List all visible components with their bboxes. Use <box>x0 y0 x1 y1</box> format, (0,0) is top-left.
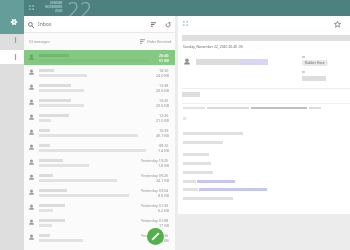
button[interactable]: Yesterday 03:54 <box>24 185 175 200</box>
staticText: 20.6 KB <box>156 103 169 108</box>
staticText: Sunday, November 22, 2020 20:40 -06 <box>183 44 243 49</box>
staticText: SUNDAY <box>50 1 63 5</box>
staticText: 8.0 KB <box>158 193 169 198</box>
staticText: 12:26 <box>159 113 169 118</box>
button[interactable]: 08:32 <box>24 140 175 155</box>
staticText: Order Received <box>147 39 172 44</box>
staticText: 18:30 <box>159 68 169 73</box>
staticText: 10:29 <box>159 128 169 133</box>
button[interactable]: Search <box>25 19 36 30</box>
button[interactable]: Yesterday 09:25 <box>24 170 175 185</box>
button[interactable]: Yesterday 01:08 <box>24 215 175 230</box>
staticText: Yesterday 03:54 <box>141 188 169 193</box>
staticText: Inbox <box>38 21 52 28</box>
staticText: 20:40 <box>159 53 169 58</box>
button[interactable]: Settings <box>7 15 20 28</box>
button[interactable]: 13:58 <box>24 80 175 95</box>
button[interactable]: Yesterday 00:36 <box>24 230 175 245</box>
staticText: 08:32 <box>159 143 169 148</box>
staticText: Yesterday 09:25 <box>141 173 169 178</box>
staticText: 17 KB <box>159 223 169 228</box>
staticText: 53 messages <box>29 39 50 44</box>
staticText: Yesterday 00:36 <box>141 233 169 238</box>
staticText: Rubber Hose <box>305 61 325 65</box>
staticText: 24.0 KB <box>156 73 169 78</box>
staticText: 13:25 <box>159 98 169 103</box>
button[interactable]: Rubber Hose <box>302 60 328 66</box>
button[interactable]: 10:29 <box>24 125 175 140</box>
staticText: 6.2 KB <box>158 208 169 213</box>
staticText: 20.6 KB <box>156 88 169 93</box>
button[interactable]: Order Received <box>138 37 174 46</box>
button[interactable]: Filter <box>148 19 159 30</box>
staticText: 21.0 KB <box>156 118 169 123</box>
staticText: 22 <box>67 0 93 24</box>
staticText: 49.7 KB <box>156 133 169 138</box>
staticText: 51 KB <box>159 58 169 63</box>
button[interactable]: Star <box>331 18 344 31</box>
staticText: 2020 <box>55 9 63 13</box>
staticText: Yesterday 01:08 <box>141 218 169 223</box>
button[interactable]: 12:26 <box>24 110 175 125</box>
staticText: 1.8 KB <box>158 163 169 168</box>
button[interactable]: Yesterday 19:25 <box>24 155 175 170</box>
button[interactable]: Yesterday 01:30 <box>24 200 175 215</box>
button[interactable]: Compose <box>147 228 164 245</box>
staticText: Yesterday 19:25 <box>141 158 169 163</box>
button[interactable]: 13:25 <box>24 95 175 110</box>
button[interactable]: 18:30 <box>24 65 175 80</box>
button[interactable]: 20:40 <box>24 50 175 65</box>
staticText: 1.4 KB <box>158 148 169 153</box>
staticText: Yesterday 01:30 <box>141 203 169 208</box>
button[interactable]: Refresh <box>162 19 173 30</box>
staticText: 34.1 KB <box>156 178 169 183</box>
staticText: 13:58 <box>159 83 169 88</box>
staticText: 8 KB <box>161 238 169 243</box>
staticText: NOVEMBER <box>45 5 63 9</box>
